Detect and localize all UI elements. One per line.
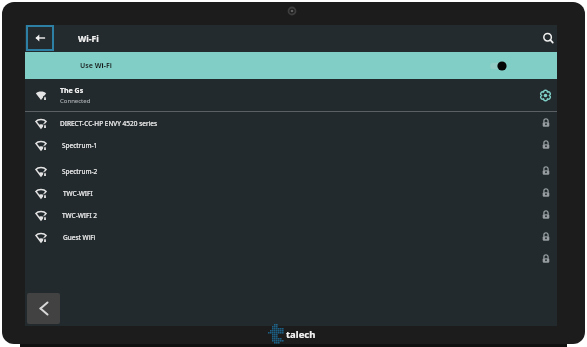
button[interactable]: Network settings xyxy=(539,89,552,102)
button[interactable]: Guest WiFi xyxy=(25,226,557,248)
button[interactable]: Use Wi-Fi xyxy=(25,52,557,79)
staticText: talech xyxy=(286,328,316,341)
staticText: The Gs xyxy=(60,86,84,96)
button[interactable]: Back xyxy=(27,293,60,324)
button[interactable]: Back xyxy=(26,25,54,51)
staticText: TWC-WIFI 2 xyxy=(62,211,98,220)
staticText: Spectrum-2 xyxy=(62,167,98,176)
button[interactable]: DIRECT-CC-HP ENVY 4520 series xyxy=(25,112,557,134)
button[interactable]: TWC-WIFI xyxy=(25,182,557,204)
staticText: Spectrum-1 xyxy=(62,141,98,150)
staticText: DIRECT-CC-HP ENVY 4520 series xyxy=(60,119,158,128)
staticText: Wi-Fi xyxy=(78,33,99,45)
button[interactable]: Spectrum-2 xyxy=(25,160,557,182)
button[interactable]: Spectrum-1 xyxy=(25,134,557,156)
button[interactable] xyxy=(25,248,557,270)
staticText: Connected xyxy=(60,97,91,105)
staticText: Use Wi-Fi xyxy=(80,61,112,71)
staticText: TWC-WIFI xyxy=(63,189,93,198)
staticText: Guest WiFi xyxy=(63,233,96,242)
button[interactable]: The Gs xyxy=(25,79,557,111)
button[interactable]: TWC-WIFI 2 xyxy=(25,204,557,226)
button[interactable]: Search xyxy=(542,32,555,45)
